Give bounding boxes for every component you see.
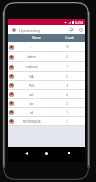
staticText: cd [14,111,49,115]
staticText: asf [14,93,49,97]
button[interactable]: - [8,42,85,52]
staticText: Name [19,36,54,40]
button[interactable]: Recents [63,147,75,159]
staticText: codeunit [14,65,49,69]
button[interactable]: NA [8,72,85,81]
staticText: 1 [49,65,85,69]
staticText: 2 [49,55,85,59]
button[interactable]: Home [40,147,52,159]
staticText: 1 [49,120,85,124]
staticText: admin [14,55,49,59]
button[interactable]: PVG [8,81,85,90]
staticText: 2 [49,102,85,106]
staticText: 5:04 [75,20,83,25]
button[interactable]: Back [20,147,32,159]
button[interactable]: Account [76,25,85,34]
button[interactable]: bo [8,99,85,108]
staticText: PVG [14,84,49,88]
staticText: NA [14,75,49,79]
button[interactable]: cd [8,108,85,117]
button[interactable]: TESTVENDOR [8,117,85,126]
staticText: 10 [49,45,85,49]
staticText: bo [14,102,49,106]
staticText: TESTVENDOR [14,120,49,124]
staticText: 3 [49,84,85,88]
button[interactable]: Notifications [67,25,76,34]
staticText: 1 [49,111,85,115]
button[interactable]: Menu [8,25,19,34]
staticText: 5 [49,75,85,79]
staticText: 4 [49,93,85,97]
button[interactable]: admin [8,52,85,62]
button[interactable]: asf [8,90,85,99]
staticText: Count [54,36,85,40]
staticText: Upcoming [19,27,40,33]
button[interactable]: codeunit [8,62,85,72]
